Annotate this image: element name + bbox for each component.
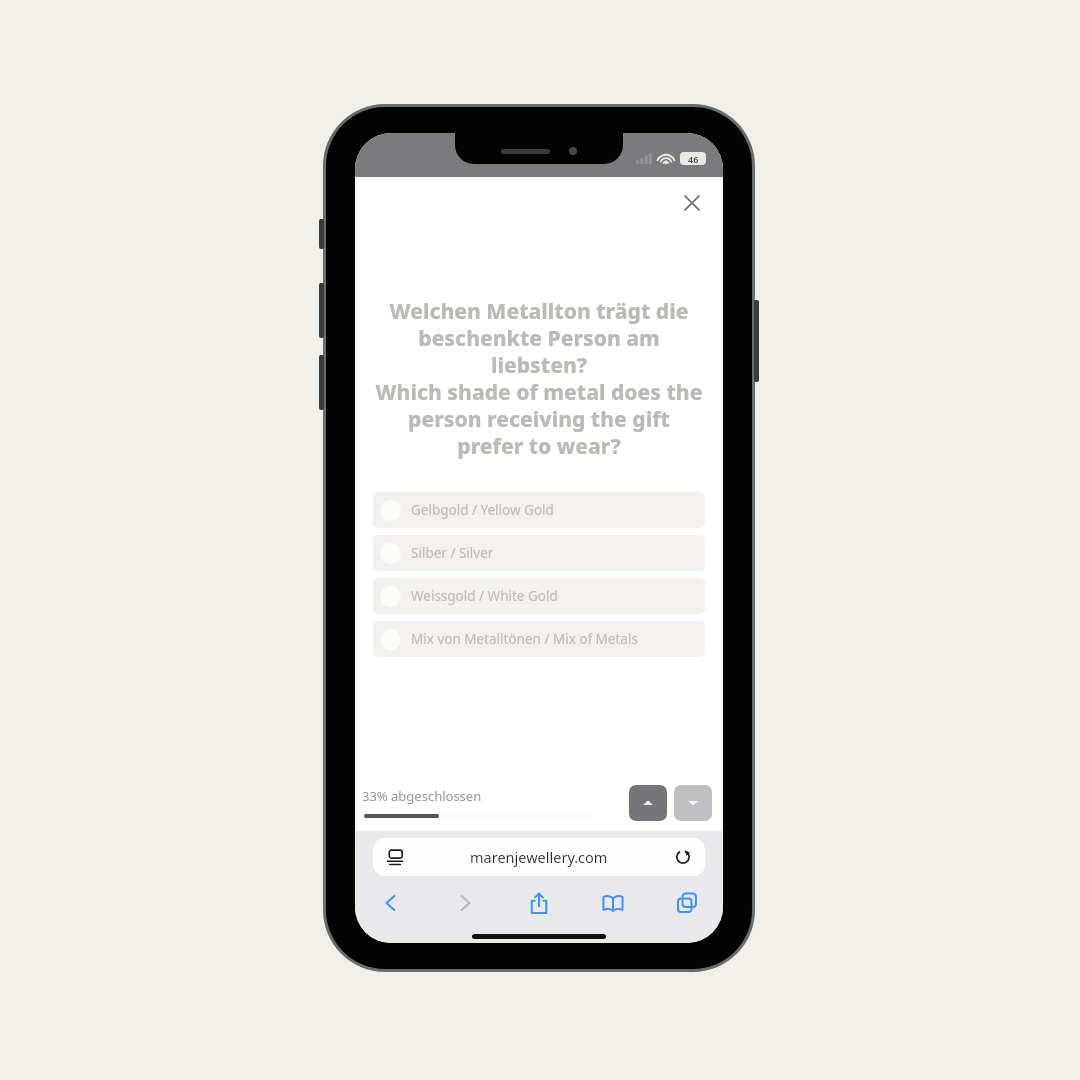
staticText: marenjewellery.com [470,847,608,867]
button[interactable]: Tabs [673,889,701,917]
button[interactable]: Mix von Metalltönen / Mix of Metals [373,621,705,657]
button[interactable]: Forward [451,889,479,917]
button[interactable]: Previous [629,785,667,821]
staticText: Silber / Silver [411,544,494,562]
button[interactable]: Back [377,889,405,917]
button[interactable]: Weissgold / White Gold [373,578,705,614]
button[interactable]: Close [677,188,707,218]
staticText: Weissgold / White Gold [411,587,558,605]
staticText: 46 [688,153,699,165]
button[interactable]: Next [674,785,712,821]
button[interactable]: Reload [674,848,692,866]
button[interactable]: Page settings [373,838,705,876]
staticText: Gelbgold / Yellow Gold [411,501,554,519]
staticText: Mix von Metalltönen / Mix of Metals [411,630,638,648]
button[interactable]: Page settings [386,848,404,866]
button[interactable]: Share [525,889,553,917]
button[interactable]: Silber / Silver [373,535,705,571]
staticText: Welchen Metallton trägt die beschenkte P… [375,297,703,460]
button[interactable]: Gelbgold / Yellow Gold [373,492,705,528]
staticText: 33% abgeschlossen [362,787,482,805]
button[interactable]: Bookmarks [599,889,627,917]
